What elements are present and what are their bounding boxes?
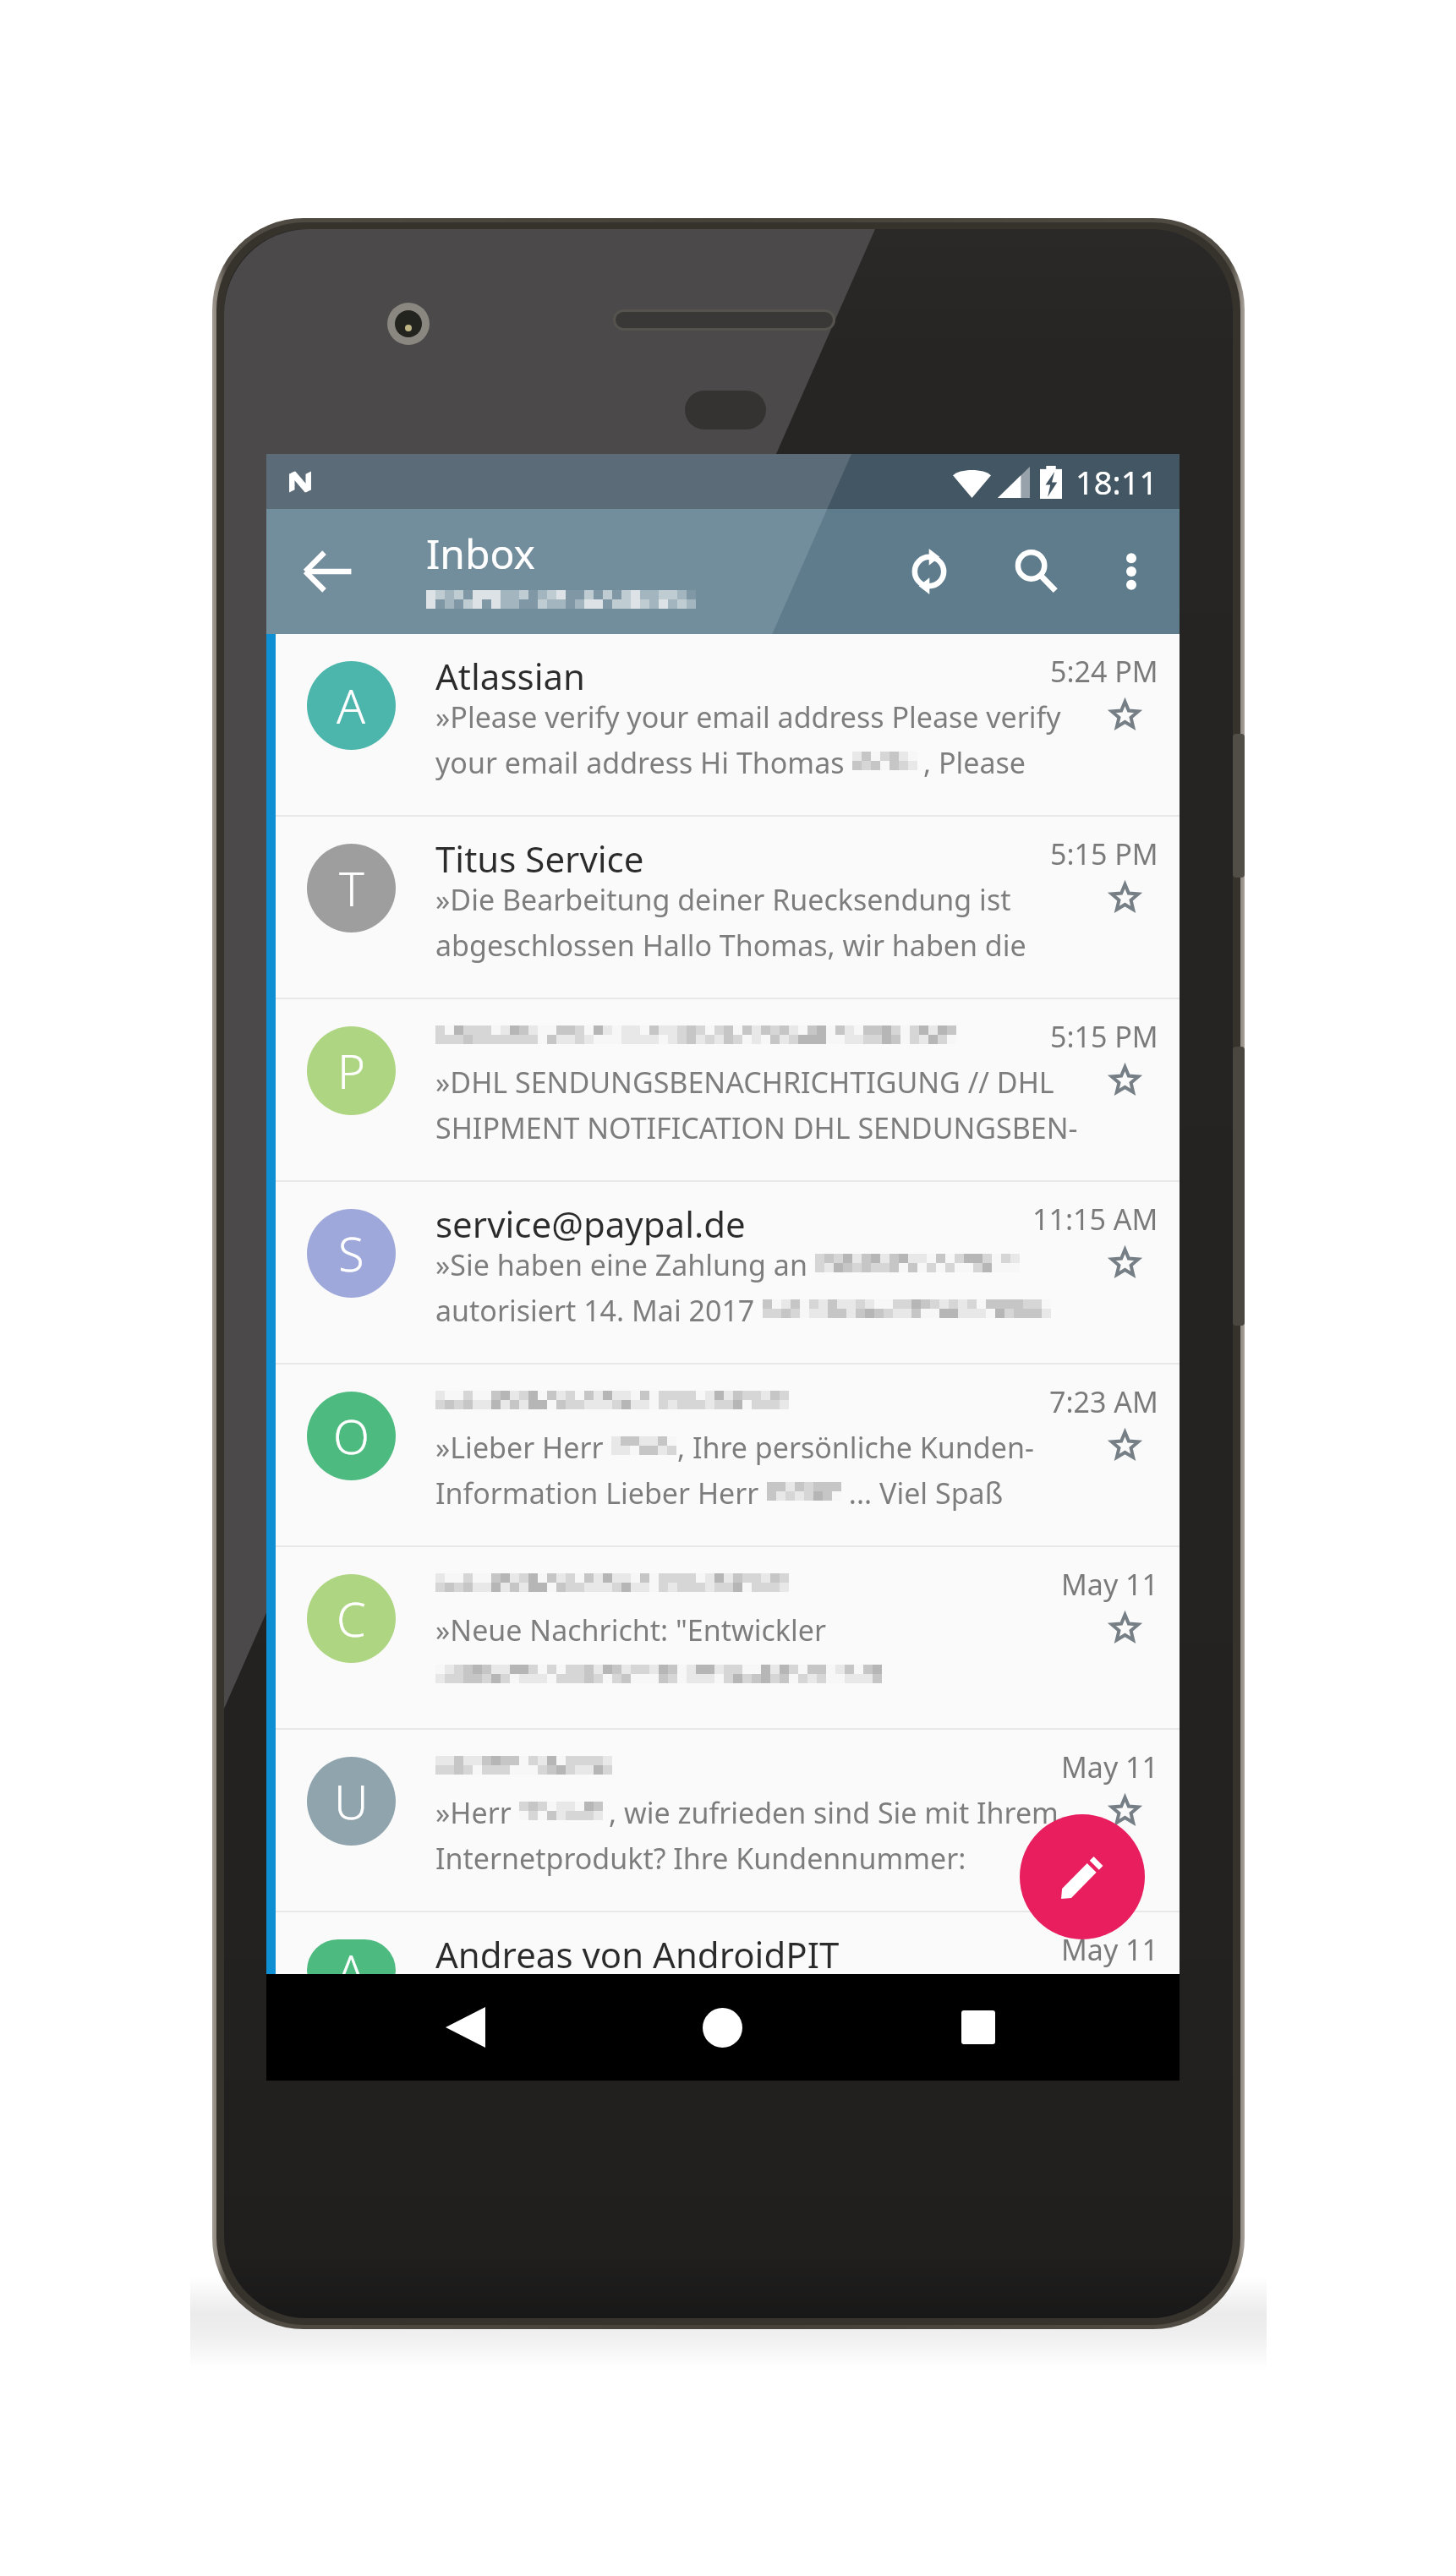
button[interactable]: Refresh bbox=[880, 522, 978, 621]
staticText: 11:15 AM bbox=[1032, 1200, 1158, 1239]
button[interactable]: Search bbox=[987, 522, 1085, 621]
staticText: , Please bbox=[923, 743, 1026, 782]
staticText: May 11 bbox=[1061, 1930, 1158, 1969]
staticText: Information Lieber Herr bbox=[435, 1474, 767, 1512]
staticText: »Sie haben eine Zahlung an bbox=[435, 1245, 815, 1284]
button[interactable]: P bbox=[266, 999, 1180, 1180]
button[interactable]: Star bbox=[1095, 1964, 1154, 2023]
staticText: A bbox=[337, 1939, 366, 2000]
staticText: T bbox=[339, 856, 364, 920]
staticText: C bbox=[337, 1586, 366, 1650]
button[interactable]: Home bbox=[671, 1977, 773, 2078]
button[interactable]: Star bbox=[1095, 868, 1154, 927]
button[interactable]: Back bbox=[279, 522, 377, 621]
staticText: Atlassian bbox=[435, 652, 585, 697]
staticText: »Lieber Herr bbox=[435, 1428, 611, 1467]
staticText: »Die Bearbeitung deiner Ruecksendung ist bbox=[435, 880, 1011, 919]
staticText: Titus Service bbox=[435, 834, 644, 880]
button[interactable]: Star bbox=[1095, 1416, 1154, 1475]
staticText: A bbox=[337, 673, 366, 737]
staticText: abgeschlossen Hallo Thomas, wir haben di… bbox=[435, 926, 1026, 965]
staticText: 5:15 PM bbox=[1050, 834, 1158, 873]
staticText: 18:11 bbox=[1076, 460, 1158, 504]
staticText: U bbox=[334, 1769, 369, 1833]
staticText: May 11 bbox=[1061, 1565, 1158, 1604]
button[interactable]: Star bbox=[1095, 1233, 1154, 1293]
button[interactable]: Star bbox=[1095, 1781, 1154, 1840]
button[interactable]: A bbox=[266, 1912, 1180, 1974]
staticText: Andreas von AndroidPIT bbox=[435, 1930, 840, 1976]
staticText: 5:24 PM bbox=[1050, 652, 1158, 691]
button[interactable]: Star bbox=[1095, 1599, 1154, 1658]
staticText: S bbox=[338, 1221, 364, 1285]
button[interactable]: Compose bbox=[1020, 1814, 1145, 1939]
button[interactable]: T bbox=[266, 817, 1180, 998]
staticText: , wie zufrieden sind Sie mit Ihrem bbox=[609, 1793, 1059, 1832]
staticText: »Herr bbox=[435, 1793, 519, 1832]
staticText: service@paypal.de bbox=[435, 1200, 746, 1245]
staticText: 7:23 AM bbox=[1049, 1382, 1158, 1421]
button[interactable]: U bbox=[266, 1730, 1180, 1911]
button[interactable]: A bbox=[266, 634, 1180, 815]
staticText: 5:15 PM bbox=[1050, 1017, 1158, 1056]
button[interactable]: Back bbox=[414, 1977, 516, 2078]
button[interactable]: Recents bbox=[928, 1977, 1029, 2078]
staticText: , Ihre persönliche Kunden- bbox=[677, 1428, 1034, 1467]
staticText: »DHL SENDUNGSBENACHRICHTIGUNG // DHL bbox=[435, 1063, 1054, 1102]
staticText: SHIPMENT NOTIFICATION DHL SENDUNGSBEN- bbox=[435, 1108, 1078, 1147]
button[interactable]: More options bbox=[1082, 522, 1180, 621]
staticText: O bbox=[333, 1403, 369, 1468]
staticText: »Please verify your email address Please… bbox=[435, 697, 1061, 736]
staticText: P bbox=[337, 1038, 365, 1102]
staticText: Inbox bbox=[426, 526, 535, 581]
staticText: ... Viel Spaß bbox=[841, 1474, 1004, 1512]
button[interactable]: Star bbox=[1095, 1051, 1154, 1110]
button[interactable]: O bbox=[266, 1365, 1180, 1545]
button[interactable]: Star bbox=[1095, 686, 1154, 745]
staticText: autorisiert 14. Mai 2017 bbox=[435, 1291, 763, 1330]
button[interactable]: C bbox=[266, 1547, 1180, 1728]
staticText: Internetprodukt? Ihre Kundennummer: bbox=[435, 1839, 966, 1878]
staticText: your email address Hi Thomas bbox=[435, 743, 852, 782]
staticText: May 11 bbox=[1061, 1747, 1158, 1786]
staticText: »Neue Nachricht: "Entwickler bbox=[435, 1611, 826, 1649]
button[interactable]: S bbox=[266, 1182, 1180, 1363]
